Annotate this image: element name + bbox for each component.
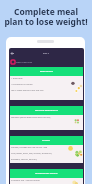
staticText: 2 bananas and 1 canned cocktail [11,179,40,182]
button[interactable]: SECOND BREAKFAST [10,106,83,115]
staticText: Oatmeal, porridge with low fat milk 150g… [11,146,61,160]
staticText: Sandwich (whole wheat bread with avocado… [11,116,51,119]
button[interactable]: BREAKFAST [10,67,83,76]
staticText: Complete meal plan to lose weight! [0,6,92,27]
staticText: 1. boiled egg 1/2 grapefruit or orange T… [11,77,44,91]
staticText: LUNCH [42,139,51,142]
button[interactable]: LUNCH [10,136,83,145]
button[interactable]: Back [9,50,15,56]
staticText: DAY 1 [43,52,50,55]
staticText: BREAKFAST [40,70,53,73]
button[interactable]: AFTERNOON SNACK [10,169,83,178]
staticText: SECOND BREAKFAST [35,109,58,112]
staticText: AFTERNOON SNACK [35,172,58,175]
staticText: Best meal plan [15,61,33,64]
